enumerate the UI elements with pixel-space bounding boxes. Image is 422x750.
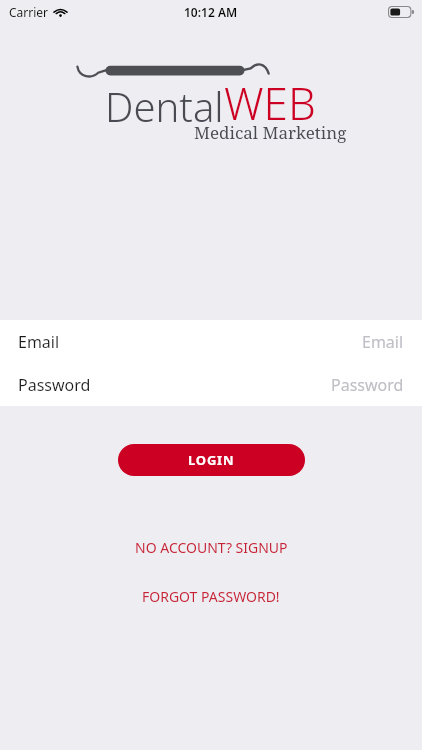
staticText: Password	[331, 374, 404, 396]
button[interactable]: Password	[0, 363, 422, 406]
staticText: LOGIN	[188, 451, 235, 469]
staticText: FORGOT PASSWORD!	[142, 587, 280, 606]
staticText: Dental	[105, 79, 224, 133]
button[interactable]: LOGIN	[118, 444, 305, 476]
staticText: Email	[18, 331, 60, 353]
button[interactable]: Email	[0, 320, 422, 363]
button[interactable]: NO ACCOUNT? SIGNUP	[135, 538, 288, 557]
staticText: Medical Marketing	[194, 121, 347, 144]
button[interactable]: FORGOT PASSWORD!	[142, 587, 280, 606]
staticText: WEB	[224, 73, 316, 133]
staticText: NO ACCOUNT? SIGNUP	[135, 538, 288, 557]
staticText: Carrier	[9, 4, 49, 20]
staticText: Password	[18, 374, 91, 396]
staticText: Email	[362, 331, 404, 353]
staticText: 10:12 AM	[184, 4, 238, 20]
